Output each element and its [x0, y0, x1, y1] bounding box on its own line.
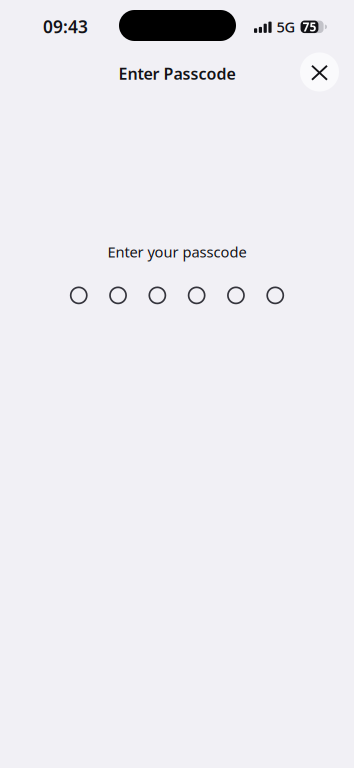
- staticText: 5G: [277, 17, 296, 36]
- staticText: 09:43: [43, 15, 88, 38]
- button[interactable]: Passcode: [70, 286, 284, 304]
- staticText: 75: [302, 19, 316, 35]
- staticText: Enter Passcode: [118, 63, 235, 84]
- button[interactable]: Close: [300, 52, 339, 91]
- staticText: Enter your passcode: [107, 242, 246, 261]
